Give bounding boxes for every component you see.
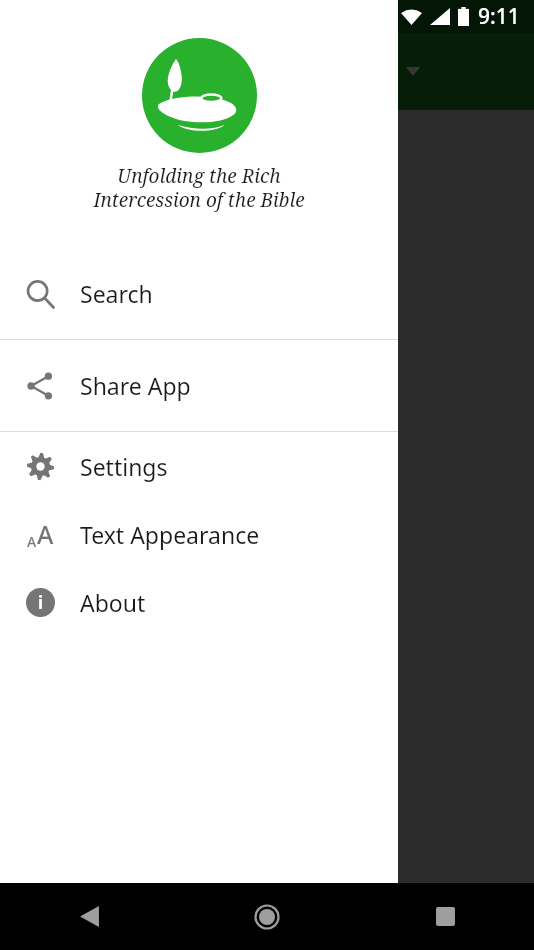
staticText: Unfolding the Rich Intercession of the B… bbox=[0, 163, 398, 212]
staticText: myself. I pray that bbox=[24, 204, 240, 238]
button[interactable]: Home bbox=[178, 883, 356, 950]
staticText: me the grace to give of bbox=[24, 167, 293, 201]
staticText: because of You bbox=[24, 574, 201, 608]
staticText: Search bbox=[80, 278, 153, 309]
staticText: needs to be with bbox=[24, 315, 220, 349]
button[interactable]: Back bbox=[0, 883, 178, 950]
staticText: A bbox=[37, 517, 54, 551]
staticText: receive will become what it bbox=[24, 278, 352, 312]
button[interactable]: i bbox=[0, 568, 398, 636]
button[interactable]: Search bbox=[0, 248, 398, 339]
button[interactable]: Share App bbox=[0, 340, 398, 431]
staticText: been kept in peace bbox=[24, 537, 246, 571]
staticText: i bbox=[38, 591, 44, 614]
button[interactable]: Settings bbox=[0, 432, 398, 500]
staticText: forever. You said, "You bbox=[24, 463, 289, 497]
staticText: in You I place my trust bbox=[24, 426, 291, 460]
staticText: will be safe; they have bbox=[24, 500, 289, 534]
staticText: You alone are my glory, and bbox=[24, 389, 354, 423]
button[interactable]: Recent apps bbox=[356, 883, 534, 950]
staticText: Text Appearance bbox=[80, 519, 260, 550]
staticText: Share App bbox=[80, 370, 191, 401]
staticText: A bbox=[27, 532, 37, 551]
staticText: Settings bbox=[80, 451, 168, 482]
staticText: faithfully. Lead bbox=[24, 611, 204, 645]
staticText: About bbox=[80, 587, 146, 618]
button[interactable]: A bbox=[0, 500, 398, 568]
staticText: 9:11 bbox=[478, 2, 520, 31]
